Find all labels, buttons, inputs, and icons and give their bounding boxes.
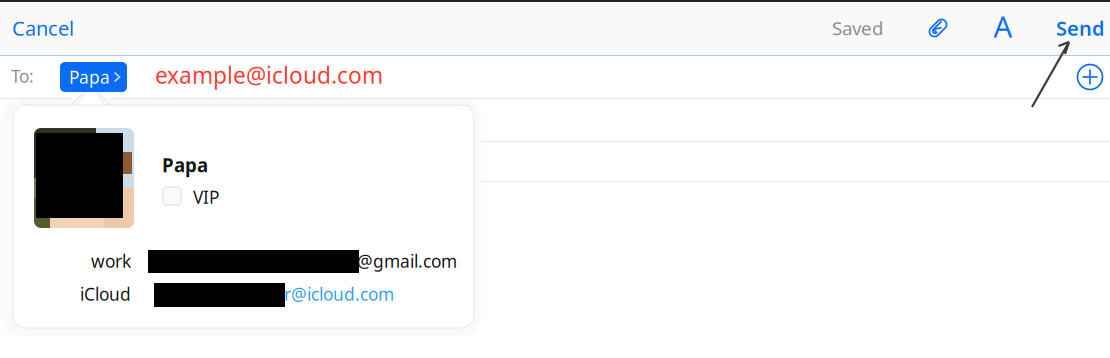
staticText: Cancel [12,15,74,41]
staticText: work [91,249,131,272]
staticText: Send [1056,15,1105,41]
staticText: Papa [69,65,110,88]
staticText: iCloud [80,282,131,305]
staticText: r@icloud.com [284,282,394,305]
button[interactable]: Attach File [916,2,960,54]
staticText: example@icloud.com [155,60,383,90]
button[interactable]: Send [1056,2,1108,54]
staticText: Saved [832,16,883,40]
staticText: Papa [162,153,208,177]
staticText: To: [11,64,34,87]
button[interactable]: Add Recipient [1073,60,1107,94]
staticText: @gmail.com [357,249,457,272]
staticText: A [993,6,1012,45]
button[interactable]: VIP [163,187,227,205]
button[interactable]: Cancel [12,2,86,54]
button[interactable]: Formatting Options [981,0,1025,52]
button[interactable]: Papa [60,62,127,92]
staticText: VIP [193,185,219,208]
